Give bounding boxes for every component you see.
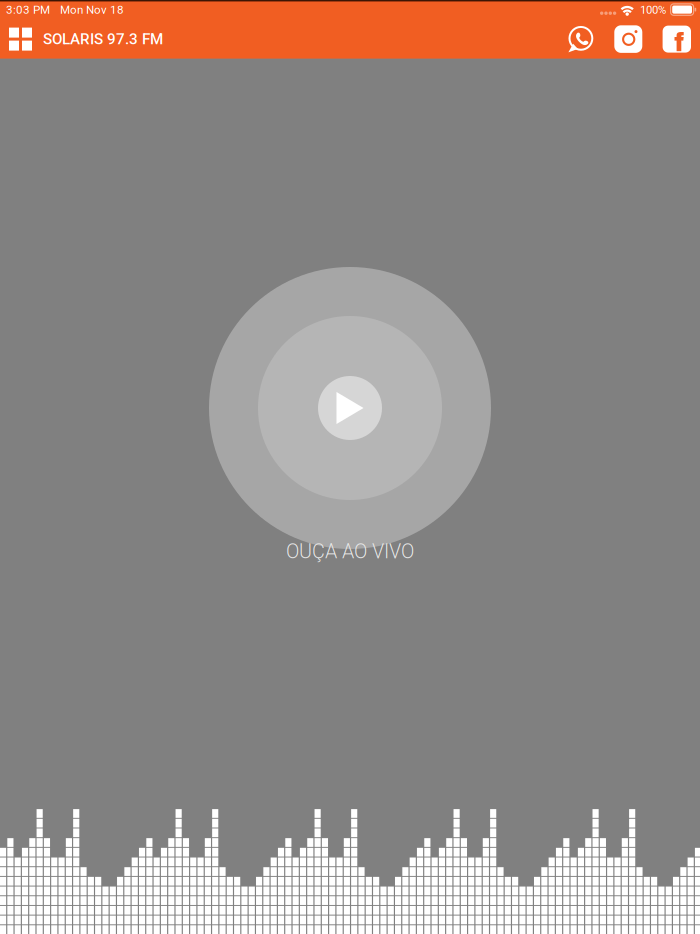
button[interactable]: WhatsApp [558,20,605,59]
button[interactable]: Facebook [652,20,700,59]
button[interactable]: Menu [0,20,43,59]
staticText: SOLARIS 97.3 FM [43,30,163,48]
staticText: 100% [640,3,666,16]
button[interactable]: Instagram [605,19,652,59]
staticText: OUÇA AO VIVO [286,540,414,563]
staticText: Mon Nov 18 [60,3,124,17]
staticText: 3:03 PM [6,3,50,17]
